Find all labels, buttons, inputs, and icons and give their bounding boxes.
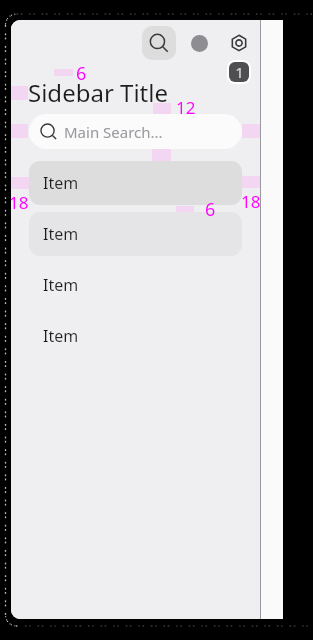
staticText: Item — [43, 223, 79, 245]
staticText: 1 — [235, 62, 244, 82]
staticText: 6 — [76, 61, 87, 86]
button[interactable]: Item — [29, 161, 242, 205]
staticText: 18 — [241, 190, 261, 213]
staticText: Main Search... — [64, 122, 163, 142]
button[interactable]: Item — [29, 314, 242, 358]
button[interactable]: Item — [29, 212, 242, 256]
staticText: Item — [43, 325, 79, 347]
staticText: Item — [43, 274, 79, 296]
staticText: 18 — [9, 191, 29, 214]
staticText: Sidebar Title — [28, 76, 168, 109]
staticText: 6 — [205, 197, 216, 222]
button[interactable]: Account — [187, 31, 211, 55]
button[interactable]: Settings — [227, 31, 251, 55]
staticText: 12 — [176, 96, 196, 119]
staticText: Item — [43, 172, 79, 194]
button[interactable]: Main Search... — [29, 114, 242, 149]
button[interactable]: Item — [29, 263, 242, 307]
button[interactable]: Search — [142, 26, 176, 60]
